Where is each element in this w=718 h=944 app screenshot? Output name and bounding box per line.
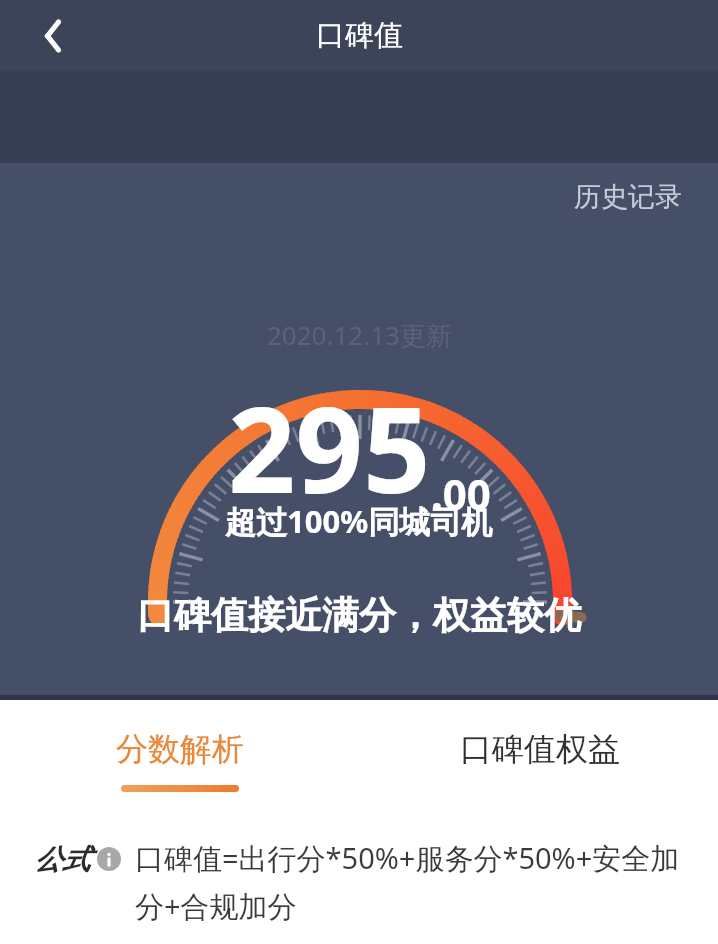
staticText: 口碑值接近满分，权益较优 xyxy=(137,592,581,639)
staticText: 2020.12.13更新 xyxy=(267,317,452,353)
staticText: 口碑值 xyxy=(316,17,403,54)
staticText: .00 xyxy=(431,465,491,522)
staticText: 超过100%同城司机 xyxy=(225,500,493,542)
button[interactable]: 分数解析 xyxy=(82,700,278,820)
staticText: 分数解析 xyxy=(116,729,244,769)
button[interactable]: Info xyxy=(97,847,121,871)
button[interactable]: Back xyxy=(26,9,80,63)
staticText: 公式 xyxy=(34,842,90,877)
staticText: 口碑值=出行分*50%+服务分*50%+安全加分+合规加分 xyxy=(135,838,684,926)
staticText: 口碑值权益 xyxy=(460,729,620,769)
button[interactable]: 口碑值权益 xyxy=(430,700,650,820)
staticText: 295 xyxy=(228,367,431,528)
button[interactable]: 历史记录 xyxy=(574,180,682,214)
